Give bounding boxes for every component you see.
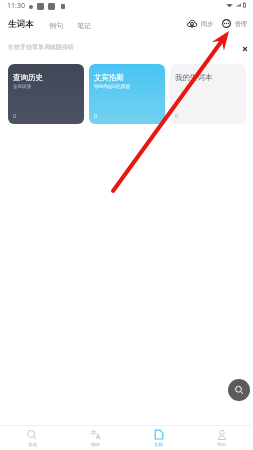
staticText: 例句: [49, 21, 63, 30]
staticText: 艾宾浩斯: [94, 73, 124, 82]
staticText: 0: [175, 112, 179, 119]
staticText: 文档: [154, 442, 163, 447]
staticText: 同步: [201, 20, 213, 28]
staticText: A: [96, 432, 101, 441]
button[interactable]: 我的: [190, 426, 253, 450]
button[interactable]: 中: [64, 426, 127, 450]
staticText: 长按开始背单词或随身听: [8, 43, 74, 51]
staticText: 0: [94, 112, 98, 119]
staticText: 11:30: [7, 1, 25, 11]
staticText: 查词: [28, 442, 37, 447]
staticText: 中: [91, 429, 98, 437]
button[interactable]: Close: [241, 45, 249, 53]
staticText: 我的: [217, 442, 226, 447]
staticText: 笔记: [77, 21, 91, 30]
staticText: 全部词簿: [13, 84, 31, 90]
staticText: 翻译: [91, 442, 100, 447]
staticText: 管理: [235, 20, 247, 28]
staticText: 0: [13, 112, 17, 119]
button[interactable]: 查词: [0, 426, 64, 450]
button[interactable]: 笔记: [77, 21, 91, 30]
button[interactable]: 例句: [49, 21, 63, 30]
button[interactable]: 我的生词本: [170, 64, 246, 124]
button[interactable]: 管理: [222, 19, 247, 28]
staticText: 查询历史: [13, 73, 43, 82]
staticText: 我的生词本: [175, 73, 213, 82]
button[interactable]: 文档: [127, 426, 190, 450]
staticText: 智能规划记忆周期: [94, 84, 130, 90]
staticText: 生词本: [8, 19, 34, 30]
button[interactable]: 同步: [187, 19, 213, 28]
button[interactable]: 艾宾浩斯: [89, 64, 165, 124]
button[interactable]: 查询历史: [8, 64, 84, 124]
button[interactable]: 生词本: [8, 19, 34, 30]
button[interactable]: Search: [228, 379, 250, 401]
